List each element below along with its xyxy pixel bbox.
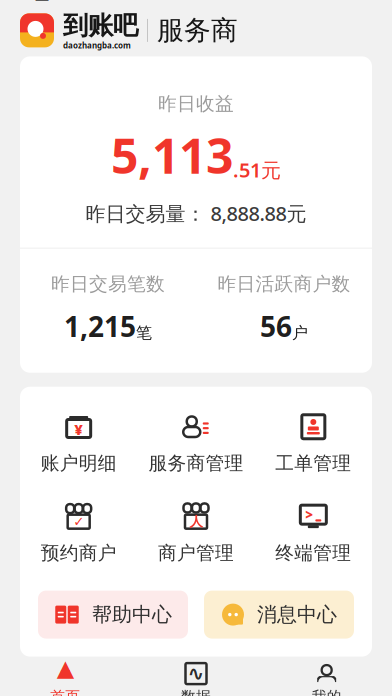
- staticText: .51元: [233, 156, 281, 183]
- staticText: ◣: [35, 0, 48, 2]
- staticText: 昨日收益: [158, 92, 234, 115]
- button[interactable]: ✓: [20, 499, 137, 569]
- staticText: 终端管理: [275, 542, 351, 565]
- staticText: 昨日交易笔数: [51, 273, 165, 295]
- staticText: 户: [292, 323, 308, 343]
- staticText: 帮助中心: [92, 602, 172, 627]
- staticText: 商户管理: [158, 542, 234, 565]
- staticText: ▲: [57, 655, 74, 681]
- staticText: 我的: [312, 688, 342, 696]
- staticText: 1,215: [64, 308, 136, 345]
- button[interactable]: 帮助中心: [38, 591, 188, 639]
- button[interactable]: 服务商管理: [137, 409, 255, 479]
- staticText: 工单管理: [275, 452, 351, 475]
- button[interactable]: 工单管理: [255, 409, 372, 479]
- staticText: 服务商管理: [148, 452, 243, 475]
- button[interactable]: 人: [137, 499, 255, 569]
- button[interactable]: ¥: [20, 409, 137, 479]
- staticText: 5,113: [111, 123, 233, 187]
- button[interactable]: 消息中心: [204, 591, 354, 639]
- staticText: 56: [260, 308, 292, 345]
- staticText: 昨日交易量： 8,888.88元: [85, 200, 306, 227]
- staticText: daozhangba.com: [63, 40, 131, 51]
- staticText: ✓: [73, 514, 84, 529]
- staticText: 首页: [50, 688, 80, 696]
- staticText: 昨日活跃商户数: [217, 273, 350, 295]
- staticText: 账户明细: [41, 452, 117, 475]
- staticText: 到账吧: [63, 10, 138, 41]
- button[interactable]: ▲: [0, 657, 131, 696]
- button[interactable]: 我的: [261, 657, 392, 696]
- staticText: 人: [189, 513, 202, 530]
- staticText: 服务商: [157, 14, 238, 47]
- staticText: 消息中心: [257, 602, 337, 627]
- staticText: 数据: [181, 688, 211, 696]
- staticText: ¥: [74, 419, 83, 439]
- button[interactable]: >: [255, 499, 372, 569]
- button[interactable]: ∿: [131, 657, 261, 696]
- staticText: 笔: [136, 323, 152, 343]
- staticText: ∿: [187, 662, 204, 685]
- staticText: 预约商户: [41, 542, 117, 565]
- staticText: >: [305, 506, 313, 523]
